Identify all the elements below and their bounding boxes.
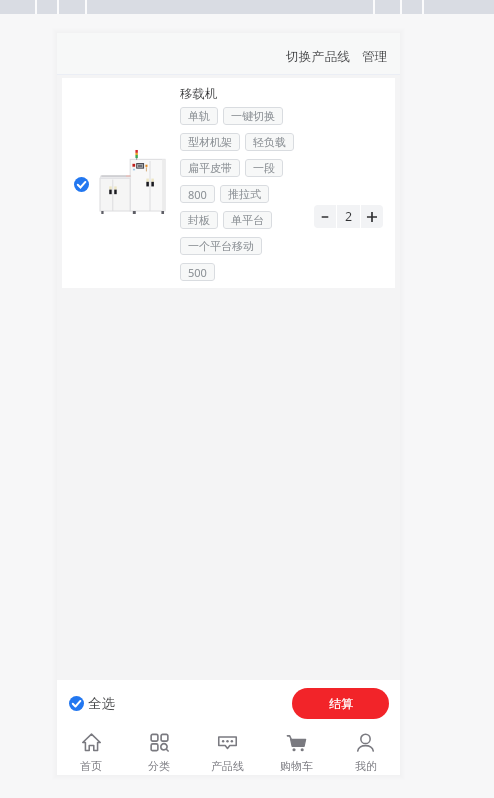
- button[interactable]: 分类: [125, 727, 193, 775]
- button[interactable]: 产品线: [193, 727, 262, 775]
- button[interactable]: 购物车: [262, 727, 331, 775]
- staticText: 推拉式: [228, 187, 261, 201]
- button[interactable]: 切换产品线: [284, 42, 352, 72]
- staticText: 单轨: [188, 109, 210, 123]
- button[interactable]: Select item: [62, 78, 395, 288]
- button[interactable]: Decrease quantity: [314, 205, 336, 228]
- staticText: 分类: [148, 759, 170, 773]
- staticText: 扁平皮带: [188, 161, 232, 175]
- staticText: 单平台: [231, 213, 264, 227]
- staticText: 结算: [329, 696, 353, 711]
- staticText: 2: [345, 208, 353, 225]
- staticText: 购物车: [280, 759, 313, 773]
- staticText: 800: [188, 187, 207, 202]
- button[interactable]: 首页: [57, 727, 125, 775]
- staticText: 切换产品线: [286, 49, 350, 65]
- staticText: 一键切换: [231, 109, 275, 123]
- button[interactable]: Increase quantity: [361, 205, 383, 228]
- button[interactable]: Select item: [68, 171, 95, 198]
- staticText: 一个平台移动: [188, 239, 254, 253]
- staticText: 产品线: [211, 759, 244, 773]
- staticText: 一段: [253, 161, 275, 175]
- staticText: 全选: [88, 695, 115, 712]
- button[interactable]: 管理: [360, 42, 390, 72]
- button[interactable]: 我的: [331, 727, 400, 775]
- staticText: 首页: [80, 759, 102, 773]
- staticText: 管理: [362, 49, 388, 65]
- staticText: 移载机: [180, 86, 218, 102]
- staticText: 我的: [355, 759, 377, 773]
- staticText: 轻负载: [253, 135, 286, 149]
- button[interactable]: 全选: [68, 689, 116, 718]
- button[interactable]: 结算: [292, 688, 389, 719]
- staticText: 型材机架: [188, 135, 232, 149]
- staticText: 封板: [188, 213, 210, 227]
- staticText: 500: [188, 265, 207, 280]
